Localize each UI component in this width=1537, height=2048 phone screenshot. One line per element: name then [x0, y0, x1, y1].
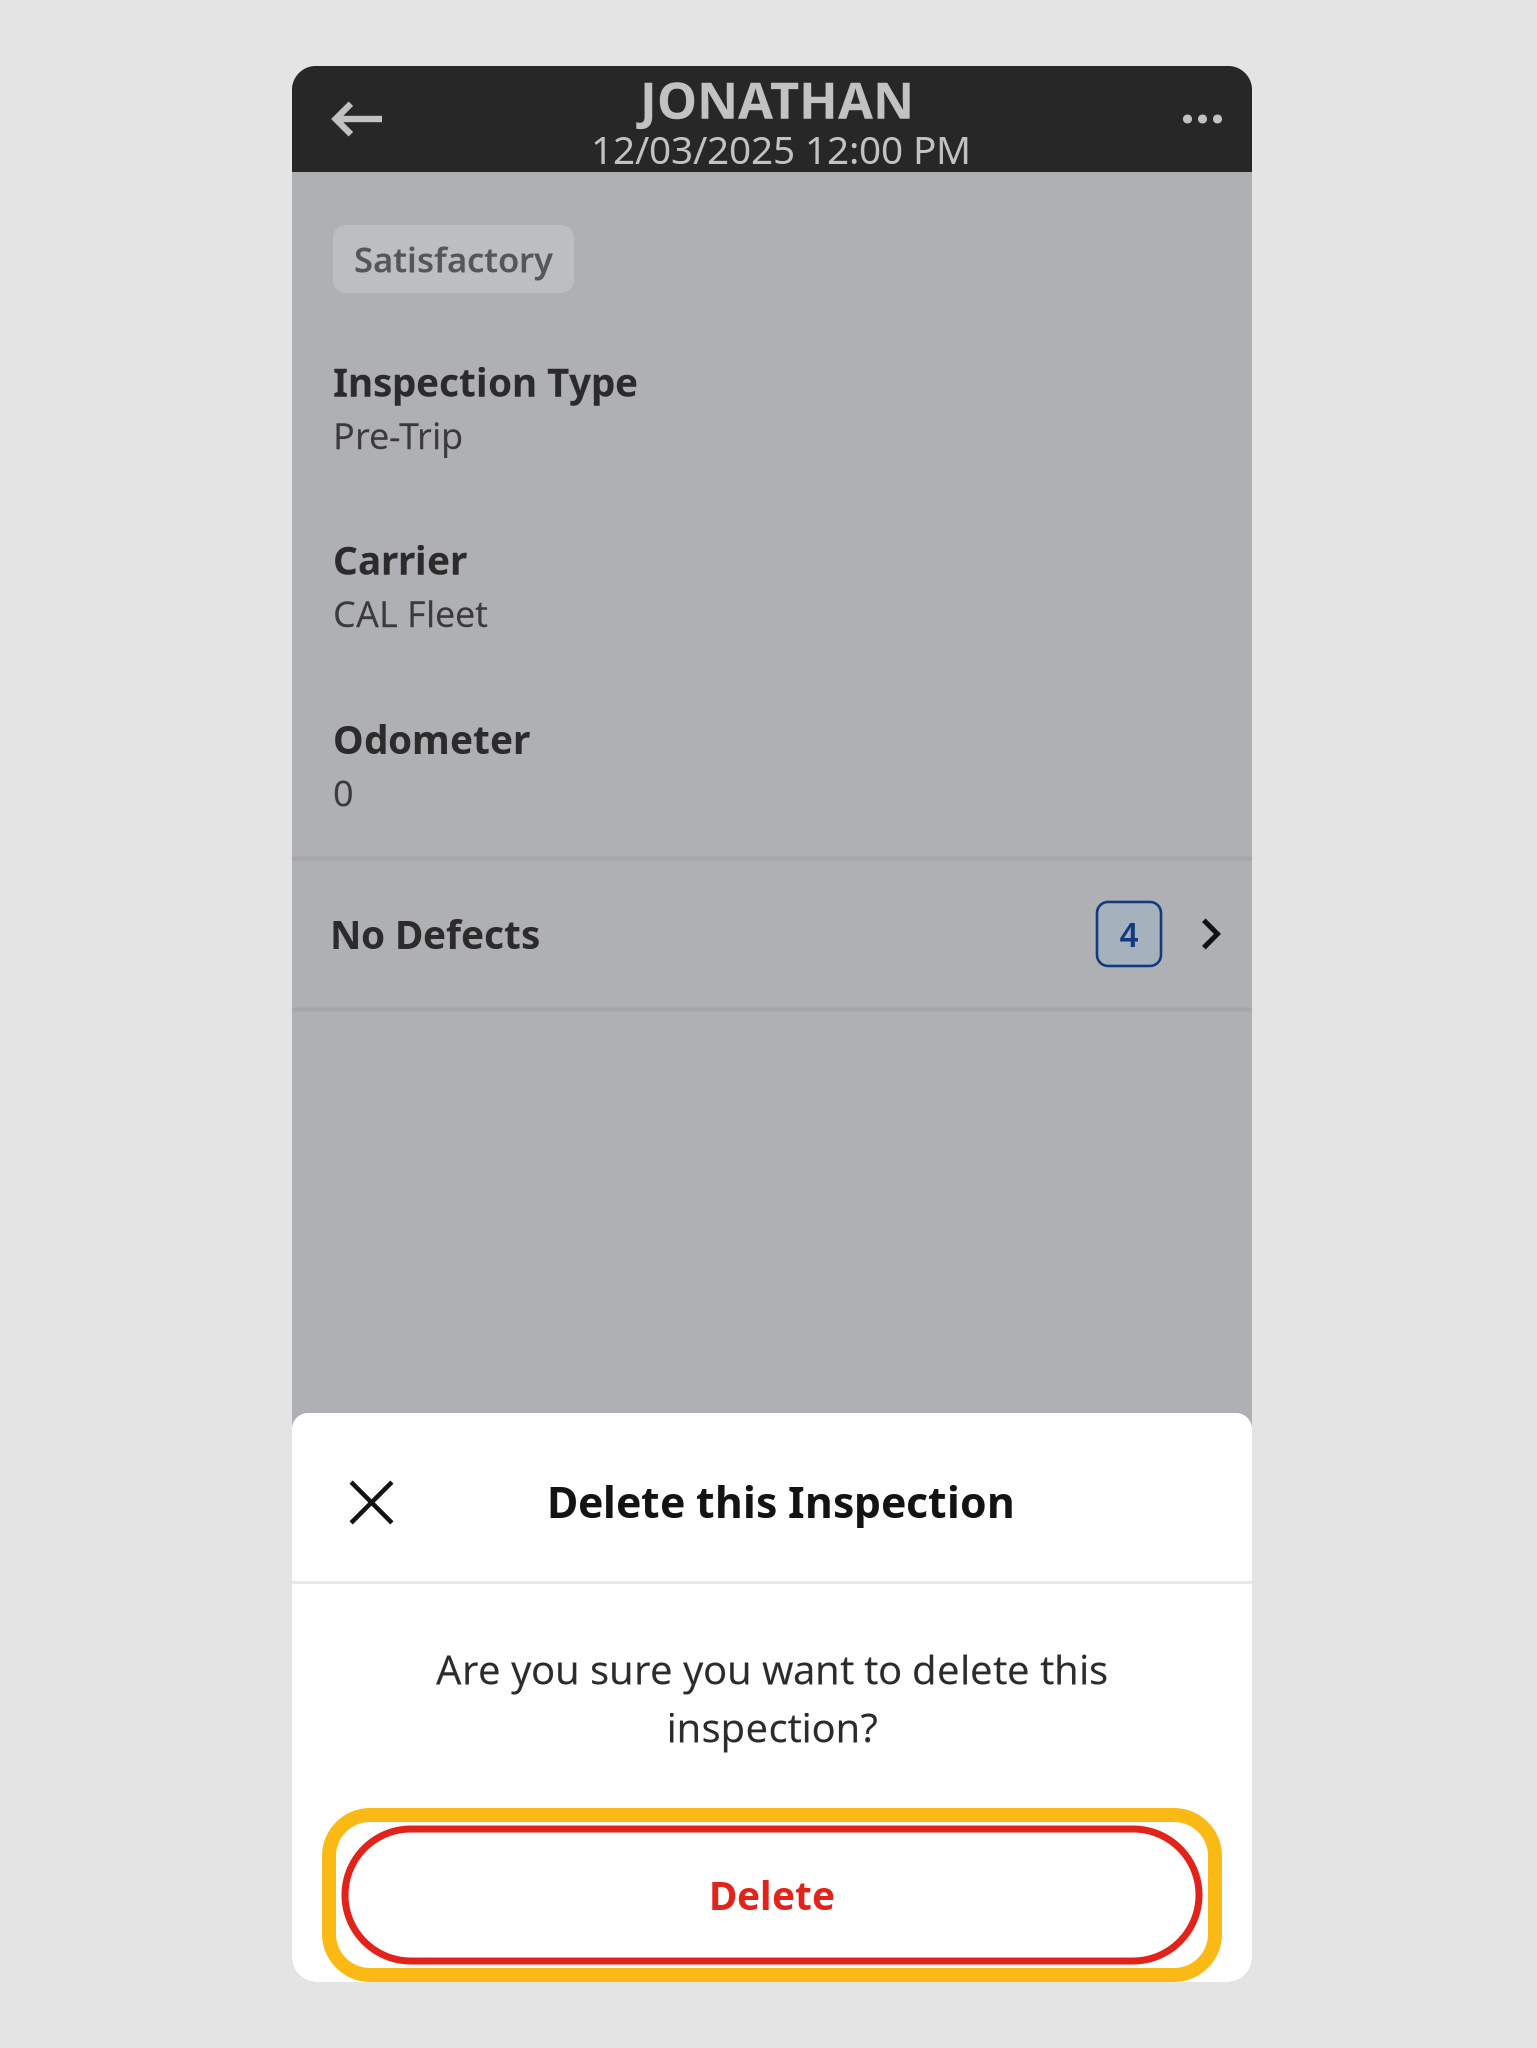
- button[interactable]: No Defects: [292, 860, 1252, 1007]
- staticText: Odometer: [333, 713, 530, 765]
- button[interactable]: More options: [1153, 66, 1252, 172]
- staticText: 12/03/2025 12:00 PM: [591, 123, 971, 175]
- staticText: CAL Fleet: [333, 589, 488, 637]
- button[interactable]: Delete: [329, 1815, 1215, 1975]
- staticText: Delete: [709, 1869, 835, 1921]
- staticText: No Defects: [330, 908, 540, 960]
- staticText: JONATHAN: [640, 65, 914, 133]
- staticText: 0: [333, 769, 354, 816]
- staticText: 4: [1119, 912, 1138, 956]
- button[interactable]: Back: [292, 66, 420, 172]
- button[interactable]: Close: [292, 1413, 451, 1591]
- staticText: Pre-Trip: [333, 411, 463, 459]
- staticText: inspection?: [666, 1700, 877, 1753]
- staticText: Carrier: [333, 534, 467, 585]
- staticText: Are you sure you want to delete this: [436, 1642, 1108, 1695]
- staticText: Delete this Inspection: [547, 1473, 1015, 1530]
- staticText: Satisfactory: [354, 236, 553, 282]
- staticText: Inspection Type: [333, 356, 638, 407]
